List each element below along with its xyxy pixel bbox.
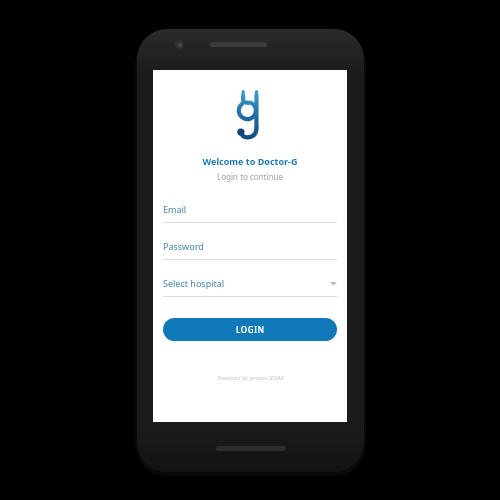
- button[interactable]: Select hospital: [163, 277, 337, 297]
- other: Doctor-G logo: [233, 91, 268, 144]
- staticText: Email: [163, 203, 187, 215]
- button[interactable]: Password: [163, 240, 337, 260]
- button[interactable]: Email: [163, 203, 337, 223]
- staticText: LOGIN: [236, 324, 265, 335]
- staticText: Password: [163, 240, 204, 252]
- staticText: Login to continue: [217, 171, 283, 182]
- staticText: Select hospital: [163, 277, 225, 289]
- staticText: Powered by grapes IDMR: [217, 374, 284, 382]
- button[interactable]: LOGIN: [163, 318, 337, 341]
- staticText: Welcome to Doctor-G: [202, 155, 298, 167]
